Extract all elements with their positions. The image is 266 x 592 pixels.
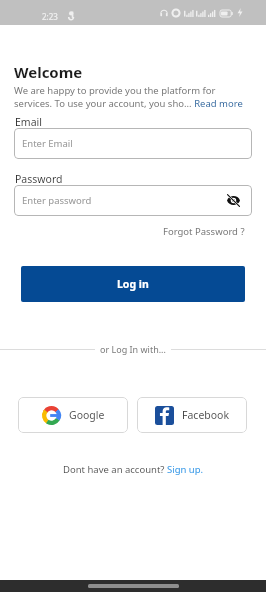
staticText: Enter Email <box>22 137 73 150</box>
staticText: We are happy to provide you the platform… <box>14 84 248 110</box>
button[interactable]: Enter password <box>14 185 252 216</box>
staticText: or Log In with... <box>100 343 166 355</box>
button[interactable]: Enter Email <box>14 128 252 159</box>
button[interactable]: Log in <box>21 266 245 302</box>
staticText: Facebook <box>182 408 230 422</box>
button[interactable]: Toggle password visibility <box>226 193 241 208</box>
staticText: Sign up. <box>167 463 204 476</box>
staticText: Dont have an account? <box>63 463 167 476</box>
staticText: Google <box>69 408 105 422</box>
staticText: Welcome <box>14 62 83 82</box>
staticText: Email <box>15 115 42 129</box>
staticText: Log in <box>117 277 149 291</box>
button[interactable]: Forgot Password ? <box>163 225 245 238</box>
staticText: Enter password <box>22 194 92 207</box>
button[interactable]: Facebook <box>137 397 247 433</box>
staticText: Password <box>15 172 63 186</box>
button[interactable]: Google <box>18 397 128 433</box>
button[interactable]: Dont have an account? <box>63 463 204 476</box>
staticText: 2:23 <box>42 11 58 22</box>
